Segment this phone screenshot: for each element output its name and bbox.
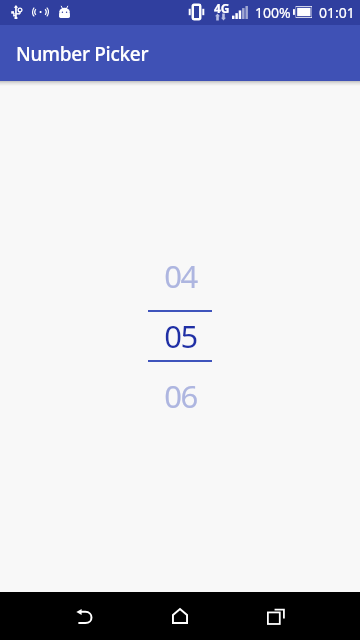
staticText: 100%	[255, 3, 291, 22]
staticText: 05	[164, 315, 197, 357]
staticText: Number Picker	[16, 41, 149, 67]
button[interactable]: Back	[60, 592, 108, 640]
button[interactable]: Home	[156, 592, 204, 640]
button[interactable]: 04	[0, 81, 360, 592]
button[interactable]: Recent apps	[252, 592, 300, 640]
staticText: 4G	[214, 0, 230, 16]
staticText: 01:01	[319, 3, 355, 22]
staticText: 06	[164, 375, 197, 417]
staticText: 04	[164, 255, 197, 297]
